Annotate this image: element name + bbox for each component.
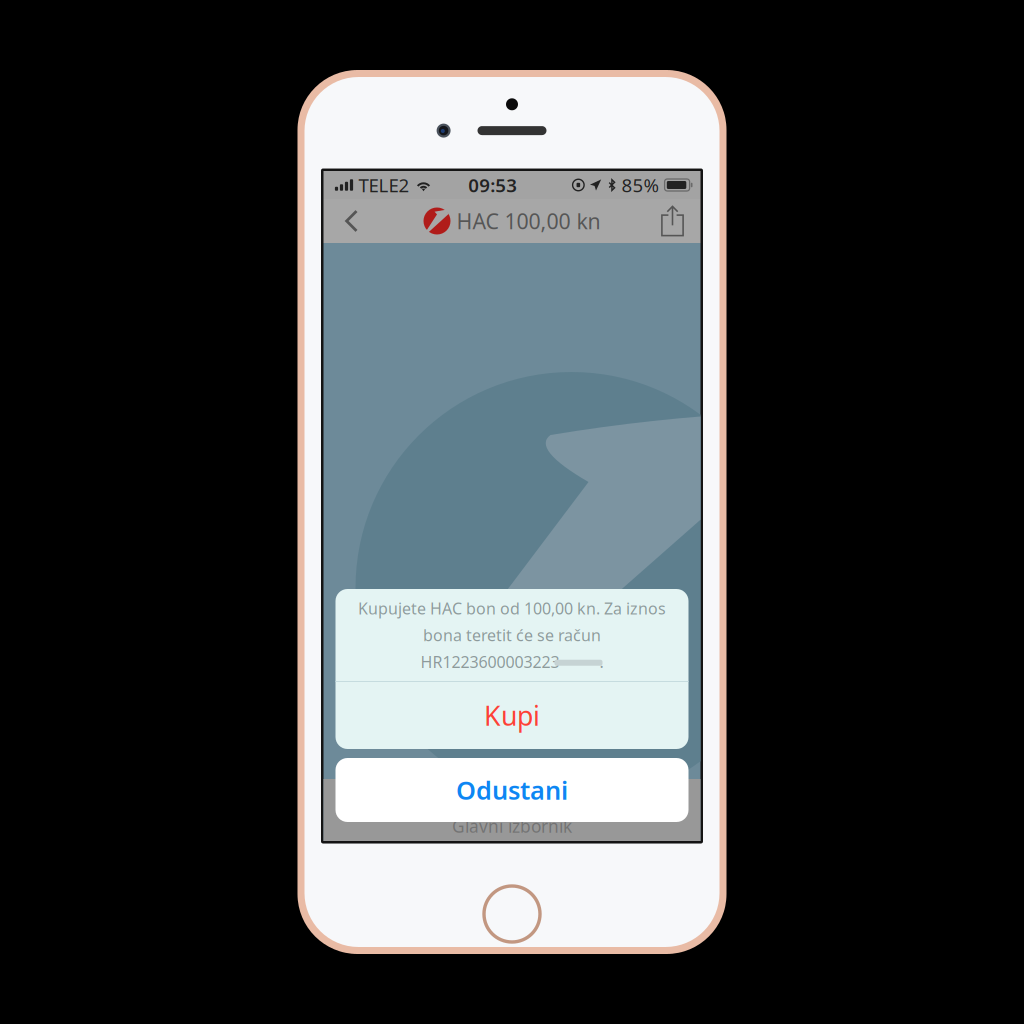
staticText: HAC 100,00 kn: [456, 207, 600, 235]
button[interactable]: Glavni izbornik: [323, 814, 700, 838]
button[interactable]: Kupi: [335, 682, 688, 749]
button[interactable]: Share: [650, 199, 694, 243]
button[interactable]: Odustani: [335, 758, 688, 822]
staticText: Kupujete HAC bon od 100,00 kn. Za iznos: [358, 598, 666, 619]
staticText: 85%: [622, 173, 660, 197]
button[interactable]: Back: [329, 199, 373, 243]
staticText: bona teretit će se račun: [423, 624, 601, 646]
staticText: TELE2: [358, 173, 409, 197]
staticText: Glavni izbornik: [452, 814, 572, 837]
staticText: Odustani: [456, 773, 568, 807]
staticText: Kupi: [484, 698, 540, 733]
staticText: HR1223600003223 .: [420, 651, 603, 672]
staticText: 09:53: [468, 173, 517, 197]
